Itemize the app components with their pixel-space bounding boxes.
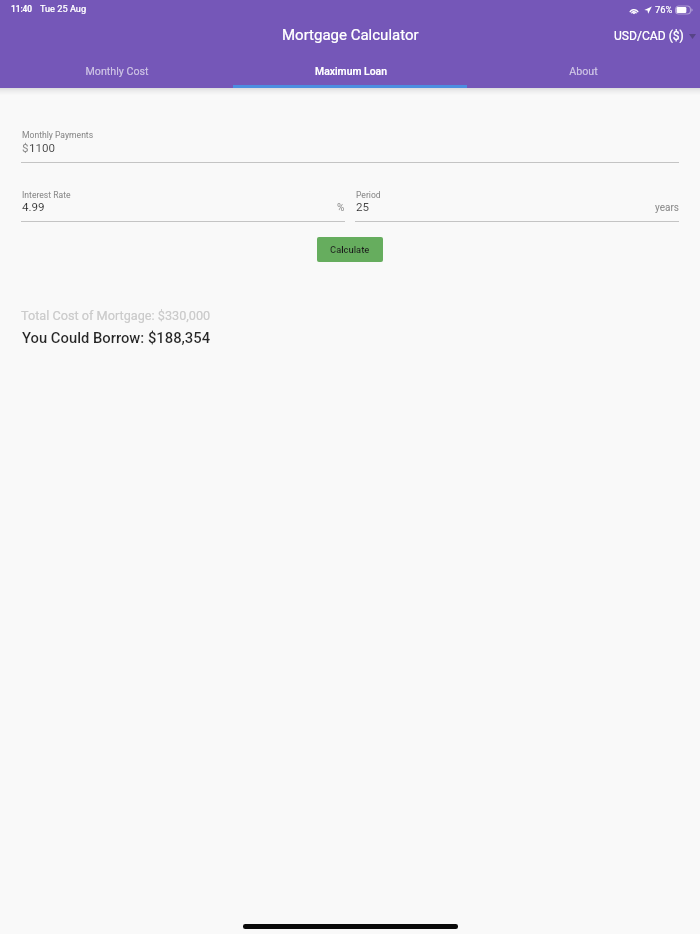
button[interactable]: Calculate: [317, 237, 383, 262]
button[interactable]: About: [467, 58, 700, 88]
staticText: USD/CAD ($): [614, 29, 684, 43]
staticText: Monthly Payments: [22, 130, 94, 140]
other: Wi-Fi: [629, 6, 639, 14]
staticText: Interest Rate: [22, 190, 71, 200]
staticText: $: [22, 141, 29, 155]
other: Battery 76 percent: [675, 5, 693, 15]
staticText: About: [569, 65, 598, 78]
staticText: Maximum Loan: [315, 65, 387, 77]
staticText: 1100: [29, 141, 56, 155]
button[interactable]: USD/CAD ($): [604, 26, 700, 46]
staticText: 11:40: [11, 4, 33, 14]
other: Select currency: [689, 34, 696, 39]
staticText: %: [337, 202, 345, 214]
staticText: Calculate: [330, 244, 370, 255]
staticText: 76%: [655, 4, 673, 15]
staticText: Mortgage Calculator: [282, 26, 419, 44]
button[interactable]: Monthly Payments: [22, 130, 700, 140]
staticText: Monthly Cost: [85, 65, 149, 78]
button[interactable]: Maximum Loan: [234, 58, 467, 88]
staticText: Total Cost of Mortgage: $330,000: [21, 308, 211, 323]
staticText: 25: [356, 200, 370, 214]
staticText: 4.99: [22, 200, 45, 214]
button[interactable]: Monthly Cost: [0, 58, 234, 88]
staticText: years: [655, 202, 679, 214]
staticText: Tue 25 Aug: [40, 3, 87, 14]
staticText: Period: [356, 190, 381, 200]
staticText: You Could Borrow: $188,354: [22, 329, 211, 346]
